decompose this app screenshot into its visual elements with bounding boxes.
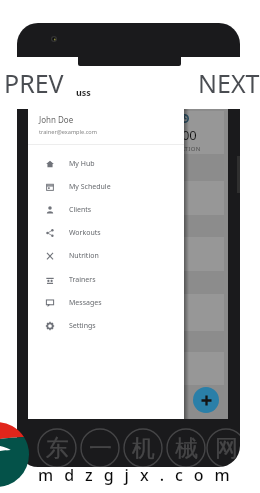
button[interactable]: My Schedule <box>28 175 184 198</box>
staticText: uss <box>76 86 91 98</box>
staticText: 0:00 <box>57 126 83 144</box>
staticText: My Schedule <box>69 182 111 192</box>
button[interactable]: PREV <box>4 66 64 100</box>
staticText: DURATION <box>167 145 201 153</box>
staticText: 一 <box>89 434 112 463</box>
staticText: John Doe <box>39 114 74 125</box>
button[interactable]: Workouts <box>28 221 184 244</box>
button[interactable]: Nutrition <box>28 244 184 267</box>
staticText: Nutrition <box>69 251 99 261</box>
button[interactable]: My Hub <box>28 152 184 175</box>
staticText: Trainers <box>69 275 96 285</box>
staticText: PREV <box>4 66 64 100</box>
staticText: Messages <box>69 298 102 308</box>
staticText: Clients <box>69 205 92 215</box>
staticText: Settings <box>69 321 96 331</box>
button[interactable]: Settings <box>28 314 184 337</box>
staticText: 机 <box>132 434 155 463</box>
staticText: 东 <box>46 434 69 463</box>
button[interactable]: NEXT <box>198 66 260 100</box>
staticText: Workouts <box>69 228 101 238</box>
staticText: NEXT <box>198 66 260 100</box>
button[interactable]: Trainers <box>28 268 184 291</box>
staticText: mdzgjx.com <box>38 464 241 486</box>
button[interactable]: Messages <box>28 291 184 314</box>
button[interactable]: Add workout <box>193 387 219 413</box>
staticText: 网 <box>215 434 238 463</box>
button[interactable]: Clients <box>28 198 184 221</box>
staticText: My Hub <box>69 159 95 169</box>
staticText: trainer@example.com <box>39 128 97 136</box>
staticText: 0:00 <box>171 126 197 144</box>
staticText: 械 <box>175 434 198 463</box>
